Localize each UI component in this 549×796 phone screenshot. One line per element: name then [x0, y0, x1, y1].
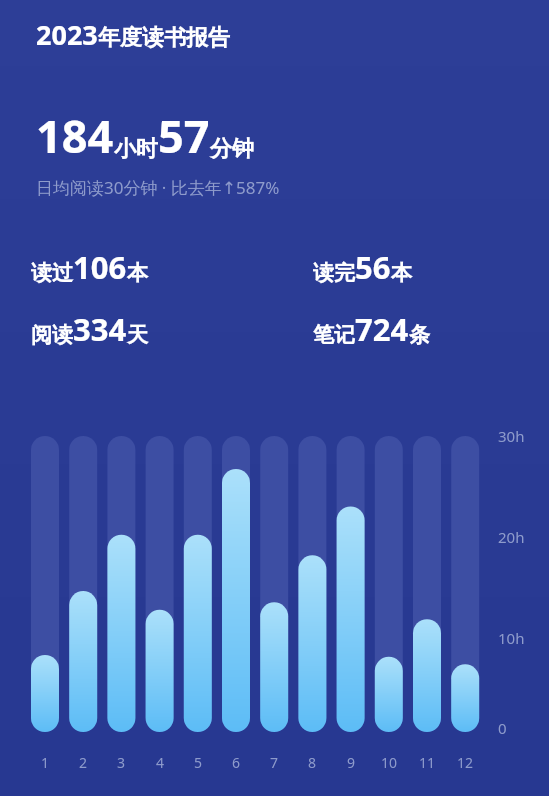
button[interactable]: 笔记 — [313, 308, 430, 350]
staticText: 12 — [445, 753, 485, 772]
staticText: 读过 — [31, 260, 73, 286]
staticText: 6 — [216, 753, 256, 772]
staticText: 4 — [140, 753, 180, 772]
staticText: 7 — [254, 753, 294, 772]
staticText: 读完 — [313, 260, 355, 286]
button[interactable]: 阅读 — [31, 308, 148, 350]
staticText: 1 — [25, 753, 65, 772]
staticText: 56 — [355, 246, 391, 288]
button[interactable]: 读完 — [313, 246, 412, 288]
button[interactable]: Monthly reading hours chart — [0, 0, 549, 796]
staticText: 0 — [498, 718, 507, 738]
staticText: 106 — [73, 246, 127, 288]
staticText: 20h — [498, 527, 525, 547]
staticText: 条 — [409, 322, 430, 348]
staticText: 334 — [73, 308, 127, 350]
staticText: 天 — [127, 322, 148, 348]
staticText: 2023 — [36, 16, 98, 53]
staticText: 11 — [407, 753, 447, 772]
staticText: 57 — [158, 105, 210, 166]
staticText: 5 — [178, 753, 218, 772]
staticText: 分钟 — [210, 135, 254, 163]
staticText: 10 — [369, 753, 409, 772]
staticText: 3 — [101, 753, 141, 772]
staticText: 本 — [127, 260, 148, 286]
staticText: 10h — [498, 628, 525, 648]
button[interactable]: 日均阅读30分钟 · 比去年↑587% — [36, 176, 280, 199]
staticText: 本 — [391, 260, 412, 286]
staticText: 2 — [63, 753, 103, 772]
staticText: 8 — [292, 753, 332, 772]
staticText: 年度读书报告 — [98, 24, 230, 52]
staticText: 9 — [331, 753, 371, 772]
staticText: 724 — [355, 308, 409, 350]
staticText: 笔记 — [313, 322, 355, 348]
staticText: 30h — [498, 426, 525, 446]
button[interactable]: 184 — [36, 105, 254, 166]
button[interactable]: 2023 — [36, 16, 230, 53]
staticText: 184 — [36, 105, 114, 166]
button[interactable]: 读过 — [31, 246, 148, 288]
staticText: 阅读 — [31, 322, 73, 348]
staticText: 小时 — [114, 135, 158, 163]
